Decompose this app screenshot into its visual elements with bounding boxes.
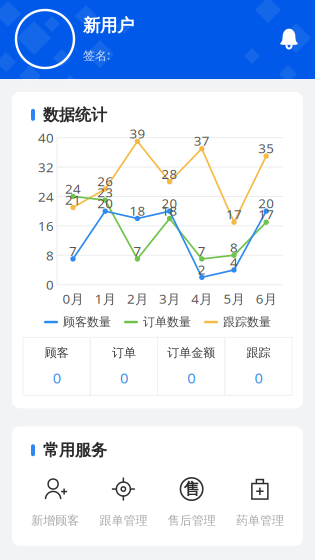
staticText: 药单管理	[236, 513, 284, 528]
button[interactable]: 订单	[90, 337, 157, 395]
button[interactable]: 顾客	[23, 337, 90, 395]
staticText: 0	[120, 368, 128, 387]
staticText: 18	[129, 202, 145, 219]
staticText: 0	[53, 368, 61, 387]
button[interactable]: 通知	[279, 27, 299, 50]
staticText: 28	[162, 165, 178, 183]
staticText: 17	[226, 205, 242, 223]
staticText: 4	[230, 253, 238, 271]
staticText: 20	[162, 194, 178, 212]
staticText: 新增顾客	[31, 513, 79, 528]
staticText: 订单金额	[167, 345, 215, 360]
staticText: 跟踪	[246, 345, 270, 360]
staticText: 0	[46, 276, 54, 293]
button[interactable]: 跟单管理	[89, 476, 157, 528]
staticText: 17	[258, 205, 274, 223]
staticText: 39	[129, 124, 145, 142]
staticText: 1月	[95, 290, 116, 307]
button[interactable]: 售	[157, 476, 226, 528]
staticText: 售	[184, 479, 200, 499]
staticText: 售后管理	[168, 513, 216, 528]
staticText: 2	[198, 260, 206, 278]
staticText: 23	[97, 183, 113, 201]
staticText: 0	[254, 368, 262, 387]
staticText: 20	[258, 194, 274, 212]
staticText: 40	[38, 129, 54, 146]
staticText: 24	[38, 188, 54, 205]
staticText: 订单	[112, 345, 136, 360]
button[interactable]: 订单金额	[157, 337, 225, 395]
staticText: 顾客	[45, 345, 69, 360]
staticText: 20	[97, 194, 113, 212]
staticText: 6月	[256, 290, 277, 307]
staticText: 21	[65, 191, 81, 208]
staticText: 18	[162, 202, 178, 219]
staticText: 5月	[223, 290, 244, 307]
staticText: 跟踪数量	[223, 315, 271, 329]
staticText: 0月	[62, 290, 83, 307]
staticText: 7	[133, 242, 141, 260]
staticText: 0	[187, 368, 195, 387]
staticText: 订单数量	[143, 315, 191, 329]
staticText: 26	[97, 172, 113, 190]
staticText: 跟单管理	[99, 513, 147, 528]
staticText: 数据统计	[43, 105, 107, 125]
staticText: 8	[230, 238, 238, 256]
staticText: 新用户	[83, 15, 134, 36]
staticText: 顾客数量	[63, 315, 111, 329]
staticText: 24	[65, 180, 81, 197]
staticText: 37	[194, 132, 210, 149]
button[interactable]: 跟踪	[225, 337, 292, 395]
staticText: 2月	[127, 290, 148, 307]
staticText: 35	[258, 139, 274, 157]
staticText: 3月	[159, 290, 180, 307]
staticText: 签名:	[83, 47, 110, 63]
staticText: 8	[46, 246, 54, 264]
staticText: 4月	[191, 290, 212, 307]
staticText: 32	[38, 158, 54, 176]
button[interactable]: 药单管理	[226, 476, 294, 528]
staticText: 7	[198, 242, 206, 260]
button[interactable]: 新增顾客	[21, 476, 89, 528]
staticText: 7	[69, 242, 77, 260]
staticText: 常用服务	[43, 440, 107, 460]
staticText: 16	[38, 217, 54, 235]
